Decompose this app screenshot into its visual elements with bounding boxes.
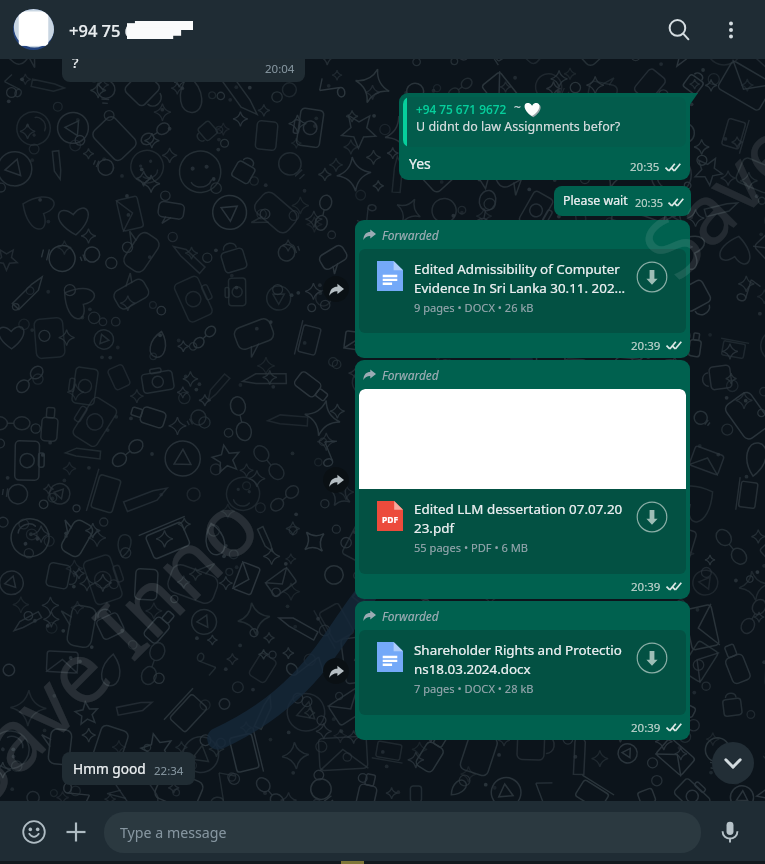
staticText: 20:04 [265,61,295,77]
staticText: +94 75 6 [69,19,135,41]
button[interactable]: Download [636,642,668,674]
staticText: 20:39 [631,579,661,595]
staticText: 20:35 [635,195,664,210]
staticText: Save [615,95,765,301]
button[interactable]: Attach [57,813,95,851]
button[interactable]: Forwarded [355,220,690,358]
staticText: 20:39 [631,720,661,736]
button[interactable]: Forwarded [355,360,690,599]
button[interactable]: Voice message [711,813,749,851]
button[interactable]: Forward [323,658,349,684]
staticText: 22:34 [154,763,184,779]
button[interactable]: Hmm good [62,752,195,785]
button[interactable]: Search [653,4,705,56]
button[interactable]: Emoji [15,813,53,851]
staticText: Edited LLM dessertation 07.07.20 23.pdf [414,500,630,537]
staticText: Shareholder Rights and Protectio ns18.03… [414,641,630,678]
staticText: +94 75 671 9672 [416,101,507,117]
staticText: 9 pages • DOCX • 26 kB [414,300,534,315]
button[interactable]: Please wait [554,186,691,216]
button[interactable]: +94 75 6 [69,0,199,59]
staticText: Edited Admissibility of Computer Evidenc… [414,260,630,297]
staticText: Forwarded [382,367,439,381]
button[interactable]: Download [636,261,668,293]
staticText: Yes [409,154,431,173]
button[interactable]: +94 75 671 9672 [399,93,690,180]
staticText: Forwarded [382,608,439,622]
staticText: Please wait [563,192,628,209]
staticText: Hmm good [73,759,146,778]
staticText: ? [72,52,79,72]
button[interactable]: Forward [323,467,349,493]
staticText: PDF [382,514,399,526]
button[interactable]: Download [636,501,668,533]
staticText: Type a message [120,823,227,842]
staticText: 20:39 [631,338,661,354]
button[interactable]: Forward [323,276,349,302]
staticText: Forwarded [382,227,439,241]
button[interactable]: Scroll to bottom [712,742,754,784]
staticText: 55 pages • PDF • 6 MB [414,540,528,555]
button[interactable]: ? [62,40,305,82]
button[interactable]: Type a message [104,812,701,853]
staticText: 20:35 [630,159,660,175]
staticText: Save Inno [0,466,283,830]
button[interactable]: More options [707,6,755,54]
staticText: U didnt do law Assignments befor? [416,118,621,135]
button[interactable]: Contact photo [13,9,54,50]
button[interactable]: Forwarded [355,601,690,740]
staticText: 7 pages • DOCX • 28 kB [414,681,534,696]
staticText: ~ [514,99,521,115]
